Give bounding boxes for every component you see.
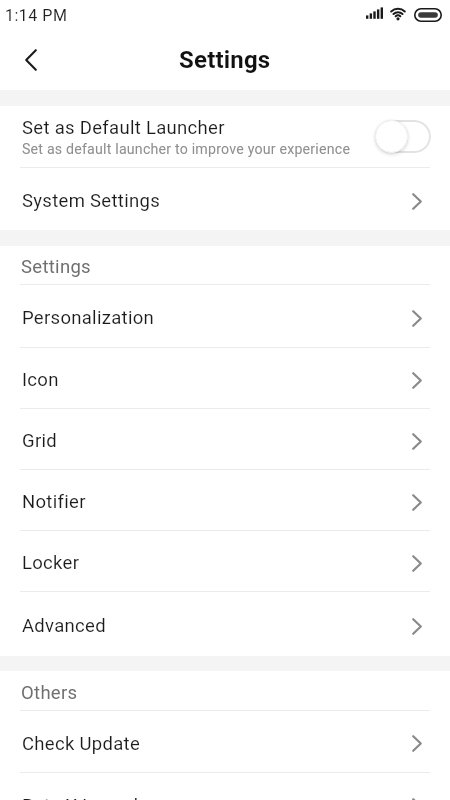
staticText: Icon xyxy=(22,369,59,391)
button[interactable]: Notifier xyxy=(0,470,450,530)
staticText: Settings xyxy=(179,46,271,74)
staticText: System Settings xyxy=(22,190,161,212)
staticText: Grid xyxy=(22,430,58,452)
staticText: Set as default launcher to improve your … xyxy=(22,141,351,158)
staticText: Settings xyxy=(21,256,91,278)
staticText: Locker xyxy=(22,552,80,574)
button[interactable]: Set as Default Launcher xyxy=(0,106,450,167)
button[interactable]: Icon xyxy=(0,348,450,408)
staticText: Notifier xyxy=(22,491,86,513)
staticText: Others xyxy=(21,682,78,704)
staticText: Personalization xyxy=(22,307,155,329)
staticText: Set as Default Launcher xyxy=(22,117,225,139)
staticText: Check Update xyxy=(22,733,141,755)
button[interactable]: Advanced xyxy=(0,592,450,656)
button[interactable]: Rate X Launcher xyxy=(0,773,450,800)
button[interactable]: System Settings xyxy=(0,168,450,230)
button[interactable]: Grid xyxy=(0,409,450,469)
button[interactable]: Locker xyxy=(0,531,450,591)
button[interactable]: Personalization xyxy=(0,285,450,347)
button[interactable] xyxy=(17,46,45,74)
staticText: Rate X Launcher xyxy=(22,795,161,800)
staticText: Advanced xyxy=(22,615,106,637)
staticText: 1:14 PM xyxy=(5,6,68,25)
button[interactable]: Check Update xyxy=(0,711,450,772)
